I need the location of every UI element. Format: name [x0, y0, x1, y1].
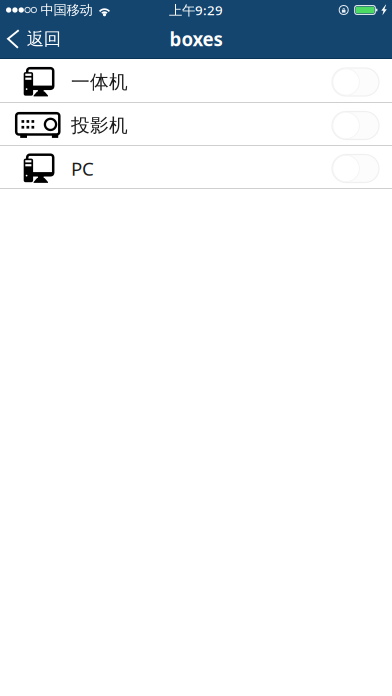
staticText: 投影机 [71, 114, 128, 137]
button[interactable]: 一体机 switch [332, 68, 379, 96]
staticText: 中国移动 [40, 2, 92, 18]
staticText: 一体机 [71, 70, 128, 93]
button[interactable]: 投影机 switch [332, 111, 379, 139]
staticText: PC [71, 156, 94, 181]
staticText: 返回 [27, 28, 61, 50]
staticText: 上午9:29 [169, 1, 223, 19]
staticText: boxes [169, 27, 222, 51]
button[interactable]: 返回 [0, 20, 73, 58]
button[interactable]: PC switch [332, 154, 379, 182]
